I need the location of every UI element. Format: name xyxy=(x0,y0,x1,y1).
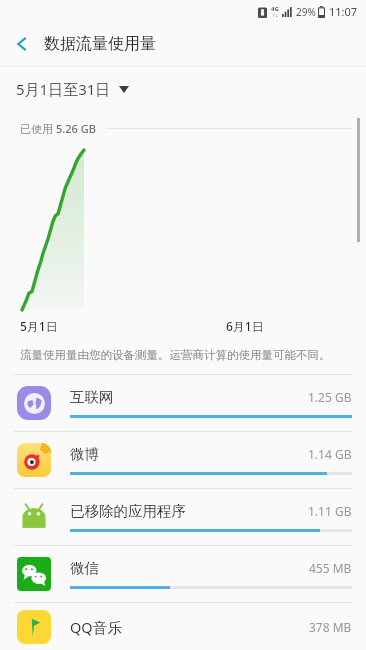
button[interactable]: 微信 xyxy=(0,546,366,603)
button[interactable]: QQ音乐 xyxy=(0,603,366,650)
staticText: 6月1日 xyxy=(226,318,264,334)
staticText: QQ音乐 xyxy=(70,617,122,637)
staticText: 29% xyxy=(296,5,316,19)
button[interactable]: 互联网 xyxy=(0,375,366,432)
button[interactable]: Back xyxy=(0,22,44,66)
staticText: 数据流量使用量 xyxy=(44,34,156,54)
staticText: 5月1日至31日 xyxy=(16,79,111,99)
staticText: 5月1日 xyxy=(20,318,58,334)
staticText: 1.14 GB xyxy=(308,446,352,462)
staticText: 4G xyxy=(271,5,279,13)
staticText: 378 MB xyxy=(309,619,352,635)
staticText: 微信 xyxy=(70,559,99,577)
staticText: 1.25 GB xyxy=(308,389,352,405)
staticText: 互联网 xyxy=(70,388,114,406)
button[interactable]: 微博 xyxy=(0,432,366,489)
staticText: 已使用 xyxy=(20,121,56,136)
staticText: 11:07 xyxy=(329,4,358,19)
staticText: 已移除的应用程序 xyxy=(70,502,186,520)
staticText: 流量使用量由您的设备测量。运营商计算的使用量可能不同。 xyxy=(20,348,331,362)
staticText: 微博 xyxy=(70,445,99,463)
staticText: 1.11 GB xyxy=(308,503,352,519)
staticText: 455 MB xyxy=(309,560,352,576)
button[interactable]: 5月1日至31日 xyxy=(0,67,366,111)
staticText: ↑↓ xyxy=(272,13,279,18)
button[interactable]: 已移除的应用程序 xyxy=(0,489,366,546)
staticText: 5.26 GB xyxy=(56,121,96,136)
